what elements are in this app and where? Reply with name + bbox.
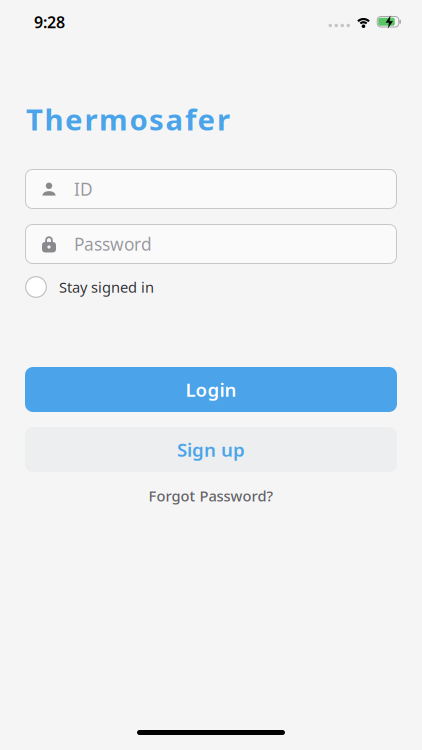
button[interactable]: Stay signed in [25,276,422,298]
staticText: 9:28 [34,11,65,33]
button[interactable]: Sign up [25,427,397,472]
staticText: Sign up [177,437,245,462]
button[interactable]: Password [25,224,397,264]
button[interactable]: Login [25,367,397,412]
staticText: Stay signed in [59,277,154,297]
staticText: Forgot Password? [148,486,273,505]
staticText: ID [74,177,93,200]
staticText: Login [185,377,236,402]
staticText: Thermosafer [26,99,230,138]
staticText: Password [74,232,152,255]
button[interactable]: ID [25,169,397,209]
button[interactable]: Forgot Password? [148,486,273,505]
